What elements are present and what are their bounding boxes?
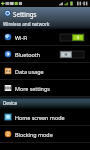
staticText: Settings [13,10,37,18]
button[interactable]: Bluetooth [0,46,90,63]
staticText: Wireless and network [3,21,50,27]
button[interactable]: Data usage [0,63,90,80]
staticText: More settings [15,85,50,92]
button[interactable]: More settings [0,80,90,97]
staticText: Data usage [15,68,44,75]
staticText: Bluetooth [15,51,41,58]
button[interactable]: Blocking mode [0,126,90,143]
staticText: Device [3,100,18,106]
staticText: Home screen mode [15,114,65,121]
staticText: Wi-Fi [15,34,28,41]
staticText: Blocking mode [15,131,53,138]
button[interactable]: Wi-Fi [0,29,90,46]
button[interactable]: Home screen mode [0,109,90,126]
